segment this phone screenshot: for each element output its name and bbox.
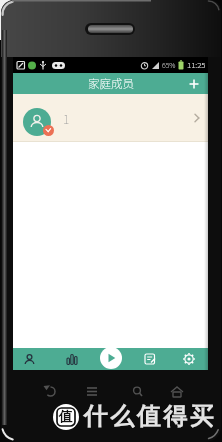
button[interactable] [13,348,52,370]
staticText: 值 [59,408,73,426]
button[interactable] [100,347,122,369]
staticText: 11:25 [187,59,206,71]
button[interactable]: 1 [13,94,208,142]
staticText: 家庭成员 [88,75,134,92]
button[interactable] [130,348,169,370]
staticText: 什么值得买 [84,401,217,431]
button[interactable] [183,73,204,94]
staticText: 65% [162,60,176,70]
staticText: 1 [63,110,70,126]
button[interactable] [91,348,130,370]
button[interactable] [169,348,208,370]
button[interactable] [52,348,91,370]
